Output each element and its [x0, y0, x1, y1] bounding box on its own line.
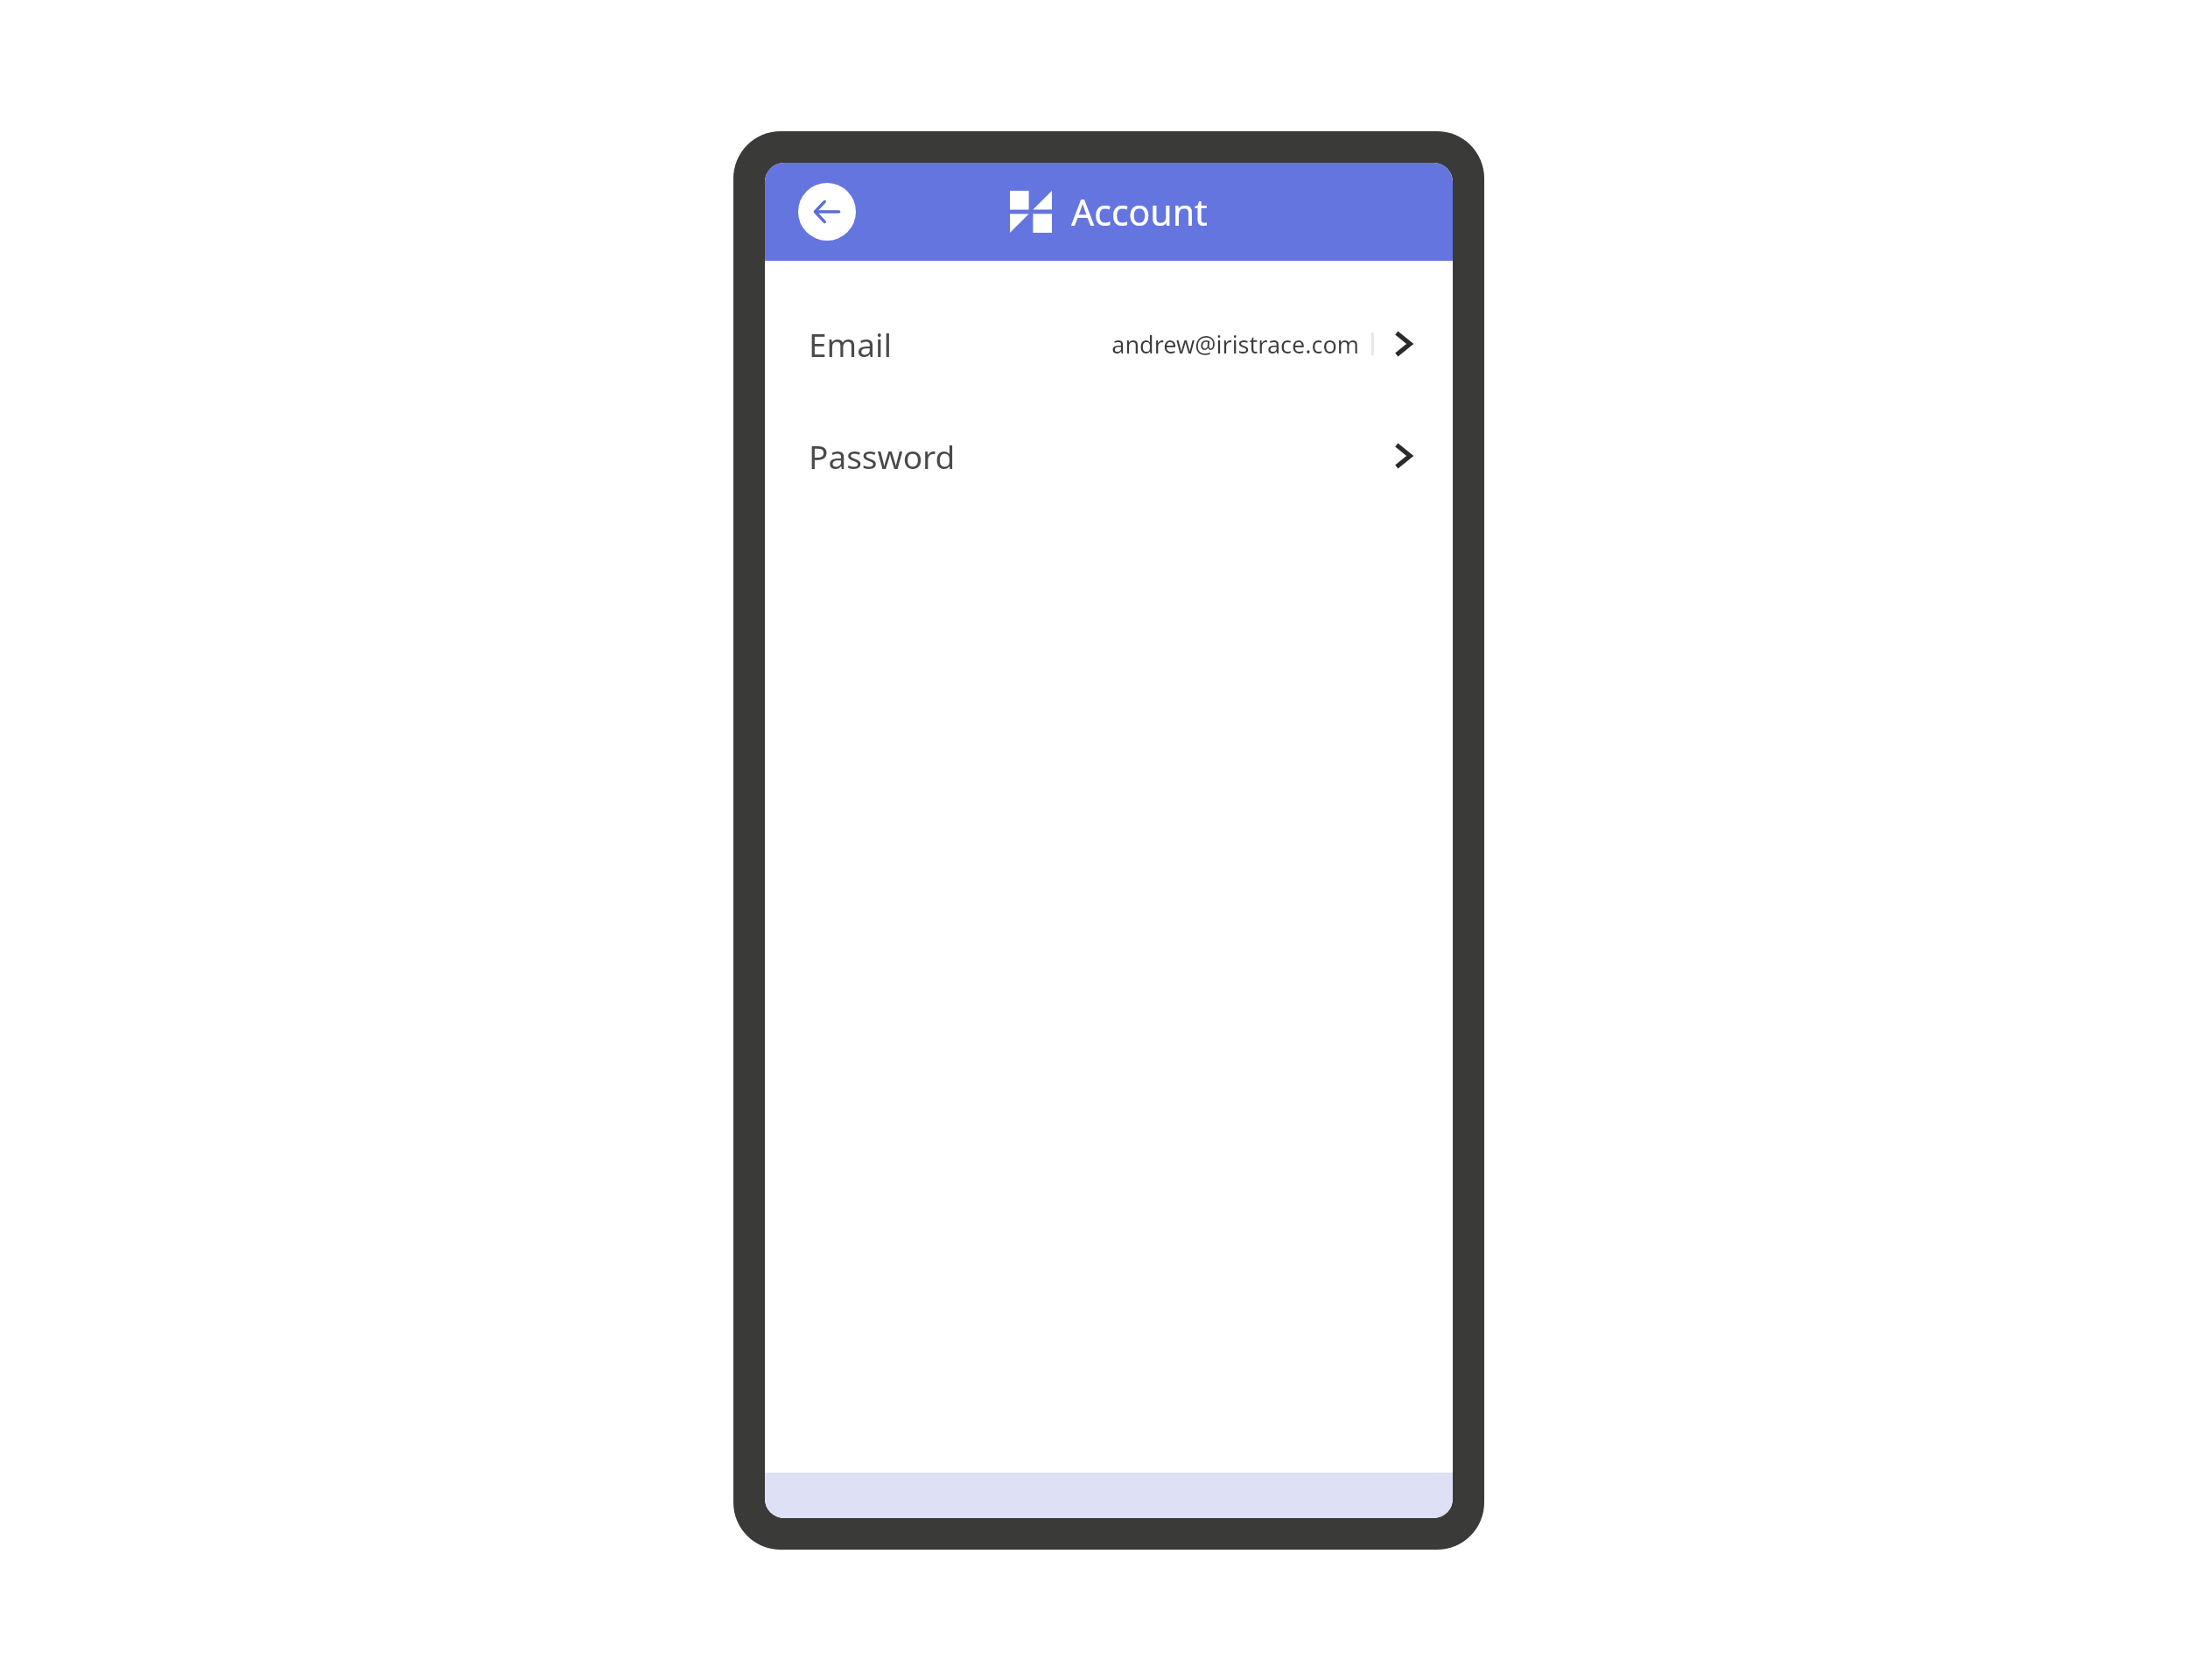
button[interactable]: Back	[798, 183, 856, 241]
button[interactable]: Email	[765, 315, 1453, 373]
staticText: Account	[1071, 187, 1208, 236]
button[interactable]: Password	[765, 427, 1453, 485]
staticText: andrew@iristrace.com	[1111, 328, 1359, 360]
staticText: Password	[809, 434, 956, 478]
staticText: Email	[809, 322, 893, 366]
